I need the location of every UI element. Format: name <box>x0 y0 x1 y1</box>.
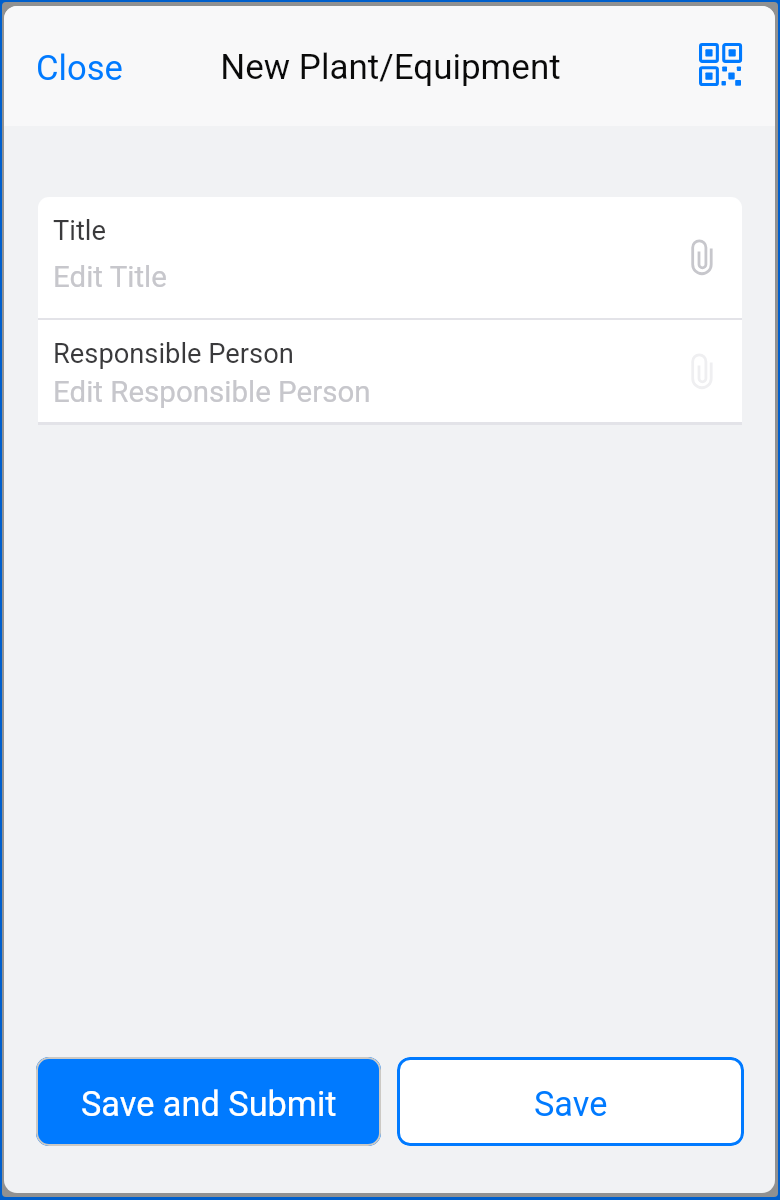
button[interactable]: Save and Submit <box>36 1057 381 1146</box>
button[interactable]: Save <box>397 1057 744 1146</box>
staticText: New Plant/Equipment <box>220 47 561 88</box>
button[interactable]: Attach file <box>676 345 728 397</box>
button[interactable]: Responsible Person <box>38 320 742 422</box>
staticText: Responsible Person <box>53 338 294 370</box>
button[interactable]: Close <box>4 36 141 101</box>
staticText: Save and Submit <box>81 1084 337 1124</box>
button[interactable]: Scan QR code <box>687 31 753 97</box>
staticText: Save <box>534 1084 608 1124</box>
button[interactable]: Attach file <box>676 231 728 283</box>
staticText: Edit Title <box>53 260 167 295</box>
staticText: Title <box>53 215 106 247</box>
staticText: Edit Responsible Person <box>53 375 371 410</box>
staticText: Close <box>36 48 123 89</box>
button[interactable]: Title <box>38 197 742 318</box>
